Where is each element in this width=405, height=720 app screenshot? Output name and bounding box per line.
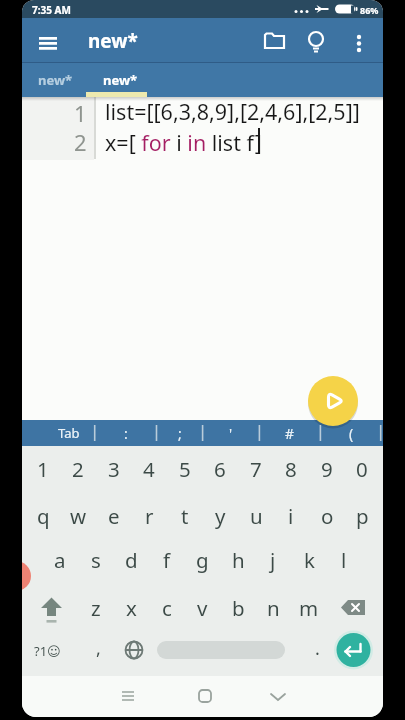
staticText: # (285, 424, 295, 443)
staticText: h (232, 546, 245, 574)
staticText: c (162, 594, 172, 622)
button[interactable]: s (79, 544, 113, 576)
button[interactable] (40, 596, 66, 626)
staticText: n (267, 594, 280, 622)
staticText: 3 (108, 455, 120, 483)
staticText: l (341, 546, 347, 574)
button[interactable]: v (185, 592, 219, 624)
button[interactable] (263, 32, 287, 52)
button[interactable]: ; (150, 417, 210, 449)
staticText: list=[[6,3,8,9],[2,4,6],[2,5]] (105, 97, 360, 125)
staticText: p (356, 502, 369, 530)
button[interactable]: w (61, 500, 95, 532)
button[interactable]: h (221, 544, 255, 576)
button[interactable] (37, 29, 61, 53)
button[interactable]: ' (201, 417, 261, 449)
button[interactable] (347, 29, 371, 53)
button[interactable]: i (274, 500, 308, 532)
button[interactable]: 9 (310, 453, 344, 485)
button[interactable]: 3 (97, 453, 131, 485)
button[interactable]: n (256, 592, 290, 624)
button[interactable]: c (150, 592, 184, 624)
staticText: u (250, 502, 263, 530)
button[interactable]: new* (24, 64, 87, 96)
button[interactable]: e (97, 500, 131, 532)
button[interactable]: o (310, 500, 344, 532)
staticText: 9 (321, 455, 333, 483)
staticText: x=[ for i in list f] (105, 128, 262, 156)
staticText: g (196, 546, 209, 574)
button[interactable]: p (345, 500, 379, 532)
staticText: f (163, 546, 171, 574)
staticText: m (299, 594, 319, 622)
staticText: r (145, 502, 154, 530)
button[interactable]: y (203, 500, 237, 532)
button[interactable]: t (168, 500, 202, 532)
button[interactable]: b (221, 592, 255, 624)
button[interactable] (124, 640, 144, 660)
staticText: o (321, 502, 334, 530)
button[interactable] (334, 630, 374, 670)
button[interactable]: , (68, 632, 128, 664)
button[interactable]: 2 (61, 453, 95, 485)
button[interactable]: 7 (239, 453, 273, 485)
staticText: 7 (250, 455, 262, 483)
staticText: ' (229, 424, 233, 443)
staticText: Tab (58, 424, 80, 442)
staticText: d (125, 546, 138, 574)
staticText: 4 (143, 455, 155, 483)
button[interactable]: 5 (168, 453, 202, 485)
staticText: 6 (214, 455, 226, 483)
button[interactable] (193, 684, 217, 708)
button[interactable]: ( (321, 417, 381, 449)
button[interactable] (116, 684, 140, 708)
staticText: 2 (72, 455, 84, 483)
button[interactable]: k (292, 544, 326, 576)
staticText: x (126, 594, 137, 622)
button[interactable]: f (150, 544, 184, 576)
button[interactable]: 8 (274, 453, 308, 485)
button[interactable] (266, 684, 290, 708)
button[interactable]: d (114, 544, 148, 576)
button[interactable]: j (256, 544, 290, 576)
staticText: y (215, 502, 226, 530)
staticText: ( (349, 424, 354, 443)
button[interactable]: 0 (345, 453, 379, 485)
button[interactable]: Tab (39, 417, 99, 449)
button[interactable]: 6 (203, 453, 237, 485)
button[interactable]: r (132, 500, 166, 532)
button[interactable]: a (43, 544, 77, 576)
button[interactable]: # (260, 417, 320, 449)
button[interactable]: m (292, 592, 326, 624)
staticText: . (315, 636, 320, 661)
button[interactable]: 1 (26, 453, 60, 485)
button[interactable]: z (79, 592, 113, 624)
button[interactable]: x (114, 592, 148, 624)
staticText: w (70, 502, 87, 530)
staticText: ?1☺ (34, 642, 61, 660)
staticText: t (181, 502, 189, 530)
staticText: a (54, 546, 66, 574)
button[interactable]: u (239, 500, 273, 532)
button[interactable]: : (96, 417, 156, 449)
staticText: z (91, 594, 101, 622)
staticText: i (288, 502, 294, 530)
button[interactable] (305, 30, 327, 54)
button[interactable]: 4 (132, 453, 166, 485)
staticText: 0 (356, 455, 368, 483)
button[interactable]: q (26, 500, 60, 532)
staticText: : (124, 424, 128, 443)
button[interactable]: ?1☺ (22, 635, 72, 667)
button[interactable]: g (185, 544, 219, 576)
staticText: 2 (74, 127, 87, 157)
button[interactable]: . (287, 632, 347, 664)
button[interactable] (308, 376, 358, 426)
button[interactable]: new* (87, 64, 153, 96)
staticText: 7:35 AM (32, 3, 71, 17)
staticText: s (91, 546, 101, 574)
staticText: ; (178, 424, 182, 443)
staticText: v (197, 594, 208, 622)
button[interactable] (157, 641, 285, 659)
button[interactable]: l (327, 544, 361, 576)
button[interactable] (340, 600, 368, 622)
